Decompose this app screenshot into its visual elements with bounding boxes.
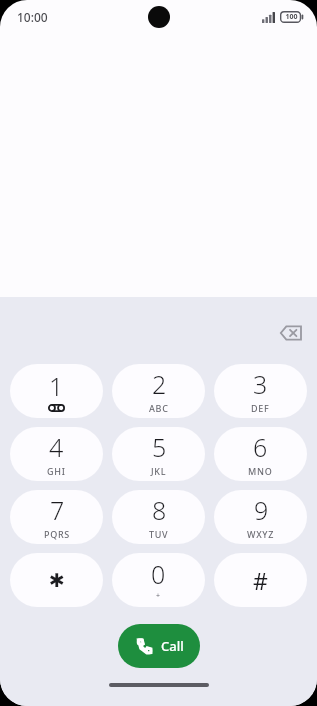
button[interactable]: 1 (10, 364, 103, 418)
staticText: + (156, 591, 161, 601)
staticText: 1 (49, 369, 64, 403)
button[interactable]: 5 (112, 427, 205, 481)
staticText: MNO (248, 465, 273, 477)
button[interactable]: 9 (214, 490, 307, 544)
button[interactable]: Backspace (272, 315, 308, 351)
staticText: 9 (254, 493, 269, 527)
staticText: 8 (152, 493, 167, 527)
staticText: 7 (50, 493, 65, 527)
button[interactable]: 6 (214, 427, 307, 481)
staticText: 100 (285, 12, 298, 22)
button[interactable]: ✱ (10, 553, 103, 607)
button[interactable]: 7 (10, 490, 103, 544)
staticText: 0 (151, 557, 166, 591)
staticText: Call (161, 637, 184, 655)
staticText: WXYZ (247, 528, 275, 540)
staticText: 5 (152, 430, 167, 464)
staticText: JKL (151, 465, 167, 477)
button[interactable]: 2 (112, 364, 205, 418)
staticText: # (253, 565, 268, 596)
staticText: GHI (47, 465, 66, 477)
staticText: ABC (149, 402, 169, 414)
button[interactable]: Call (118, 624, 200, 668)
staticText: TUV (149, 528, 169, 540)
button[interactable]: 0 (112, 553, 205, 607)
button[interactable]: 4 (10, 427, 103, 481)
staticText: ✱ (49, 569, 65, 591)
staticText: 2 (152, 367, 167, 401)
staticText: 10:00 (17, 9, 48, 25)
staticText: PQRS (44, 528, 70, 540)
staticText: 4 (49, 430, 64, 464)
button[interactable]: # (214, 553, 307, 607)
staticText: DEF (251, 402, 270, 414)
staticText: 6 (253, 430, 268, 464)
button[interactable]: 8 (112, 490, 205, 544)
button[interactable]: 3 (214, 364, 307, 418)
staticText: 3 (253, 367, 268, 401)
